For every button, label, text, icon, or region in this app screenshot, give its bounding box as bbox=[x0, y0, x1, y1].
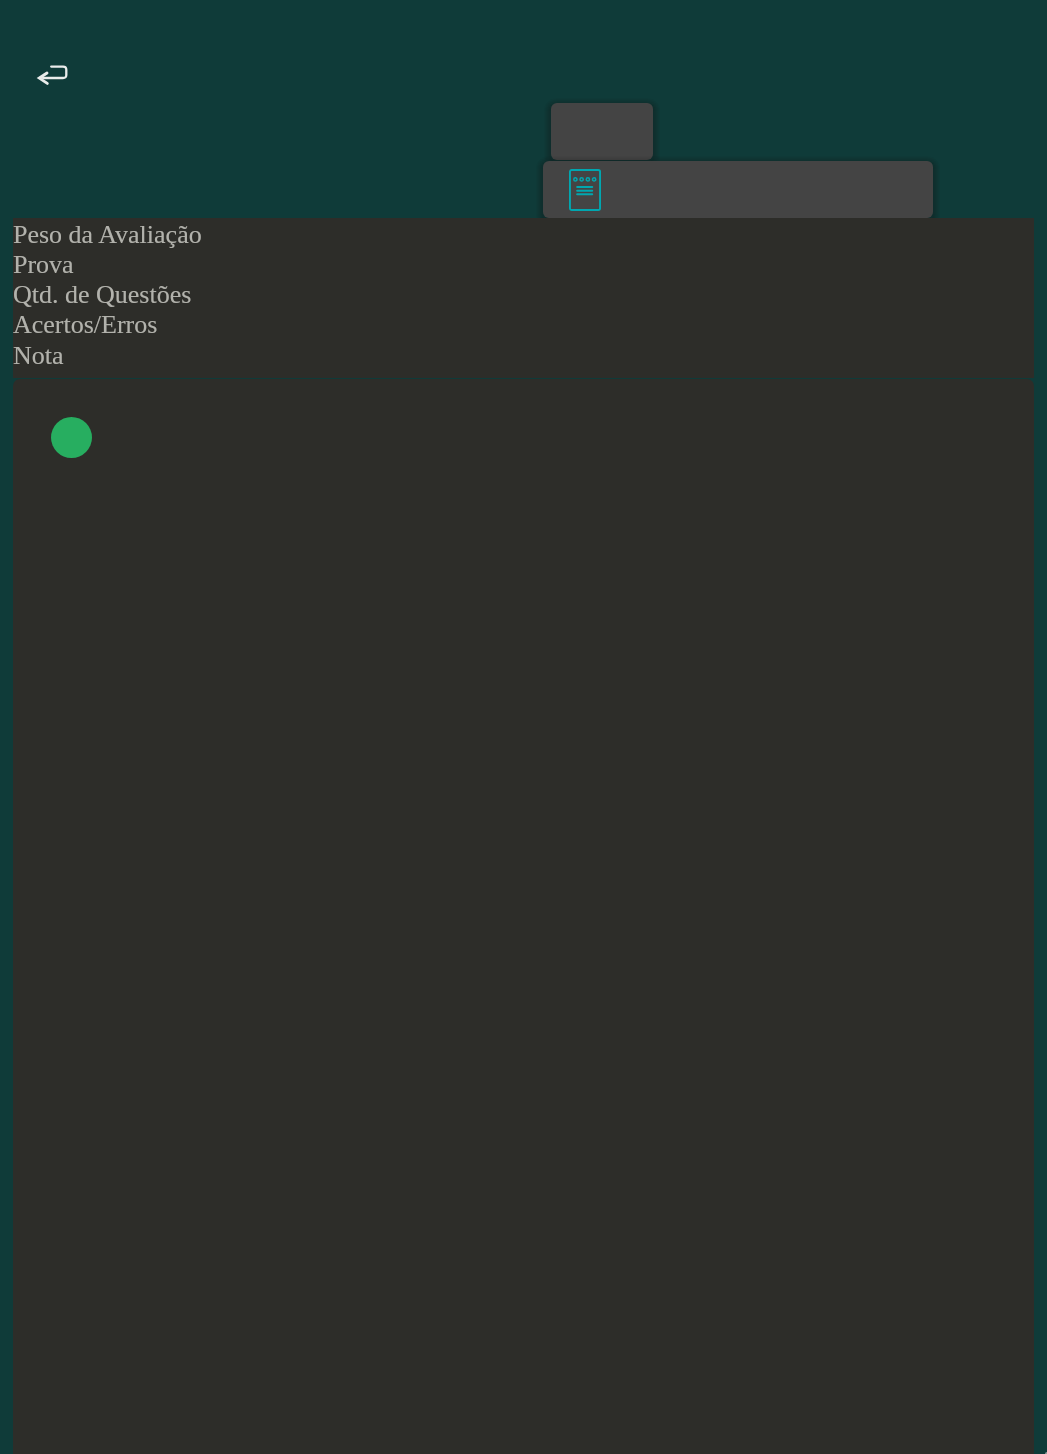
button[interactable] bbox=[551, 103, 653, 160]
other: Notes bbox=[569, 169, 601, 211]
button[interactable]: Notes bbox=[543, 161, 933, 218]
staticText: Peso da Avaliação bbox=[13, 220, 202, 249]
staticText: Acertos/Erros bbox=[13, 310, 158, 339]
button[interactable] bbox=[51, 417, 92, 458]
button[interactable]: Back bbox=[28, 55, 72, 91]
staticText: Qtd. de Questões bbox=[13, 280, 192, 309]
staticText: Prova bbox=[13, 250, 74, 279]
staticText: Nota bbox=[13, 341, 64, 370]
